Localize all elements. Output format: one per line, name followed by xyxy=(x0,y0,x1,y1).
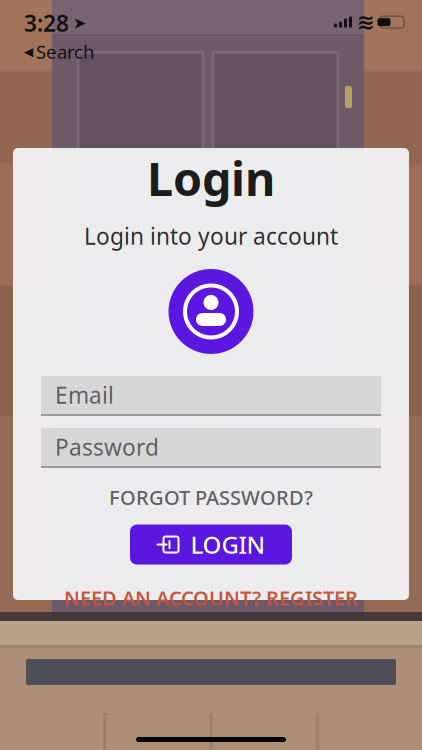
staticText: LOGIN xyxy=(190,529,265,560)
staticText: Search xyxy=(36,39,95,64)
staticText: NEED AN ACCOUNT? REGISTER xyxy=(64,584,358,611)
staticText: FORGOT PASSWORD? xyxy=(109,484,313,511)
button[interactable]: NEED AN ACCOUNT? REGISTER xyxy=(54,576,368,619)
button[interactable]: ◀ xyxy=(24,39,95,64)
staticText: Login xyxy=(147,147,275,209)
staticText: 3:28 xyxy=(24,8,69,38)
staticText: Email xyxy=(55,380,114,410)
staticText: ➤ xyxy=(73,14,86,32)
staticText: ≋ xyxy=(357,10,375,34)
staticText: ◀ xyxy=(24,45,33,58)
staticText: Password xyxy=(55,432,159,462)
button[interactable]: LOGIN xyxy=(130,524,292,564)
button[interactable]: FORGOT PASSWORD? xyxy=(99,476,323,519)
staticText: Login into your account xyxy=(84,221,338,251)
